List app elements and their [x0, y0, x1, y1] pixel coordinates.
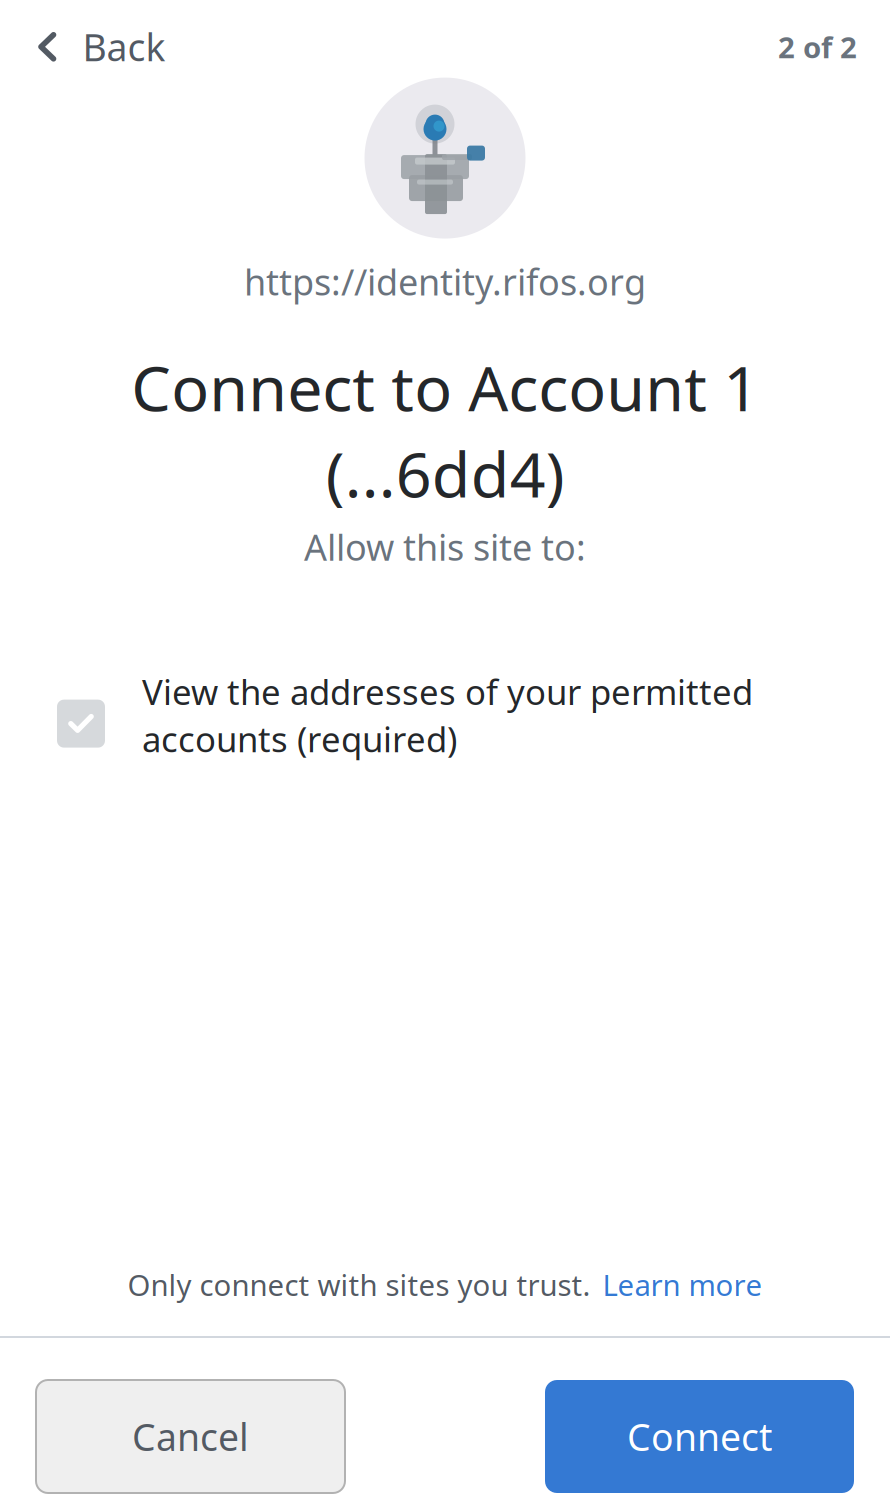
staticText: Connect to Account 1 (...6dd4) — [131, 345, 759, 515]
staticText: Allow this site to: — [304, 523, 586, 571]
button[interactable]: Connect — [545, 1380, 854, 1493]
button[interactable]: Back — [0, 10, 181, 84]
staticText: https://identity.rifos.org — [244, 258, 646, 305]
staticText: 2 of 2 — [778, 27, 857, 66]
staticText: Back — [82, 22, 165, 72]
button[interactable]: Cancel — [36, 1380, 345, 1493]
staticText: Only connect with sites you trust. — [127, 1265, 590, 1304]
staticText: Connect — [627, 1412, 772, 1461]
button[interactable]: View the addresses of your permitted acc… — [0, 571, 890, 762]
button[interactable]: Learn more — [590, 1265, 762, 1304]
staticText: View the addresses of your permitted acc… — [142, 669, 753, 762]
staticText: Cancel — [132, 1412, 249, 1461]
staticText: Learn more — [602, 1265, 762, 1304]
button[interactable]: 2 of 2 — [778, 15, 890, 78]
